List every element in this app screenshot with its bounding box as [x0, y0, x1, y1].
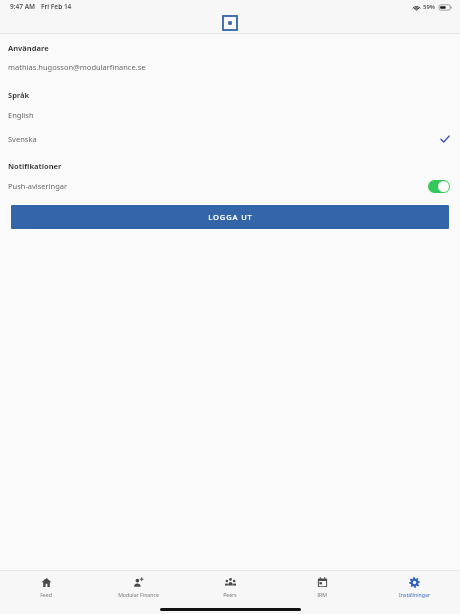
staticText: English [8, 110, 34, 120]
staticText: Fri Feb 14 [41, 2, 72, 11]
button[interactable]: English [0, 103, 460, 127]
staticText: Feed [40, 591, 52, 598]
staticText: Inställningar [399, 591, 430, 598]
staticText: Användare [8, 43, 49, 53]
button[interactable]: Peers [184, 571, 276, 604]
button[interactable]: App logo [223, 16, 237, 30]
button[interactable]: Svenska [0, 127, 460, 151]
button[interactable]: Push-aviseringar [0, 174, 460, 198]
staticText: LOGGA UT [208, 212, 253, 222]
staticText: 9:47 AM [10, 2, 36, 11]
staticText: IRM [317, 591, 327, 598]
button[interactable]: Feed [0, 571, 92, 604]
staticText: Svenska [8, 134, 37, 144]
staticText: mathias.hugosson@modularfinance.se [8, 62, 146, 72]
button[interactable]: LOGGA UT [11, 205, 449, 229]
button[interactable]: mathias.hugosson@modularfinance.se [0, 56, 460, 78]
button[interactable]: Inställningar [368, 571, 460, 604]
button[interactable]: Modular Finance [92, 571, 184, 604]
staticText: Språk [8, 90, 30, 100]
staticText: Peers [223, 591, 237, 598]
staticText: Notifikationer [8, 161, 62, 171]
button[interactable]: IRM [276, 571, 368, 604]
staticText: Modular Finance [118, 591, 159, 598]
staticText: Push-aviseringar [8, 181, 68, 191]
staticText: 59% [423, 3, 436, 11]
other: Push notifications toggle [428, 180, 450, 193]
